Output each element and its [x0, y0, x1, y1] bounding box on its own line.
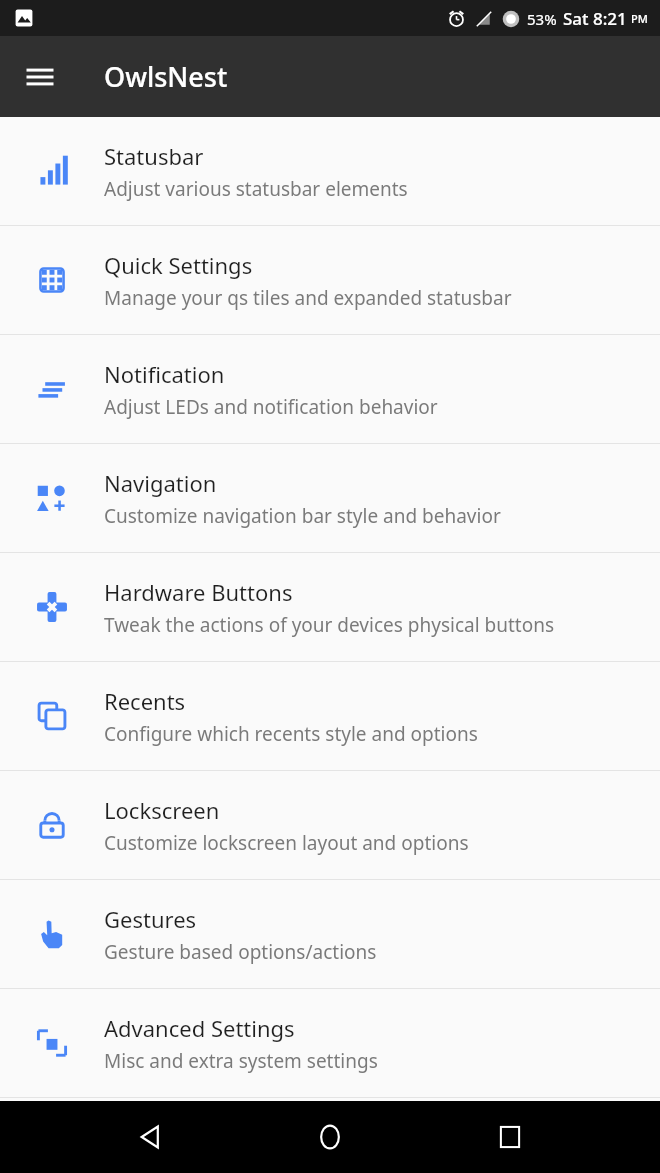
button[interactable]: Lockscreen — [0, 771, 660, 879]
button[interactable]: Hardware Buttons — [0, 553, 660, 661]
button[interactable]: Gestures — [0, 880, 660, 988]
staticText: Navigation — [104, 468, 217, 498]
staticText: Configure which recents style and option… — [104, 721, 478, 747]
button[interactable]: Recents — [480, 1107, 540, 1167]
staticText: PM — [631, 11, 648, 26]
staticText: 53% — [527, 9, 557, 29]
button[interactable]: Home — [300, 1107, 360, 1167]
staticText: Sat 8:21 — [563, 7, 627, 30]
staticText: Adjust LEDs and notification behavior — [104, 394, 438, 420]
staticText: Notification — [104, 359, 225, 389]
button[interactable]: Open navigation drawer — [12, 49, 68, 105]
button[interactable]: Statusbar — [0, 117, 660, 225]
staticText: Customize navigation bar style and behav… — [104, 503, 501, 529]
button[interactable]: Recents — [0, 662, 660, 770]
staticText: Manage your qs tiles and expanded status… — [104, 285, 512, 311]
button[interactable]: Advanced Settings — [0, 989, 660, 1097]
staticText: Advanced Settings — [104, 1013, 295, 1043]
staticText: Customize lockscreen layout and options — [104, 830, 469, 856]
staticText: Statusbar — [104, 141, 204, 171]
button[interactable]: Back — [120, 1107, 180, 1167]
button[interactable]: Quick Settings — [0, 226, 660, 334]
button[interactable]: Navigation — [0, 444, 660, 552]
staticText: OwlsNest — [104, 58, 228, 95]
staticText: Adjust various statusbar elements — [104, 176, 408, 202]
staticText: Lockscreen — [104, 795, 220, 825]
staticText: Quick Settings — [104, 250, 253, 280]
staticText: Misc and extra system settings — [104, 1048, 378, 1074]
staticText: Gesture based options/actions — [104, 939, 377, 965]
staticText: Tweak the actions of your devices physic… — [104, 612, 555, 638]
staticText: Hardware Buttons — [104, 577, 293, 607]
staticText: Gestures — [104, 904, 197, 934]
button[interactable]: Notification — [0, 335, 660, 443]
staticText: Recents — [104, 686, 186, 716]
